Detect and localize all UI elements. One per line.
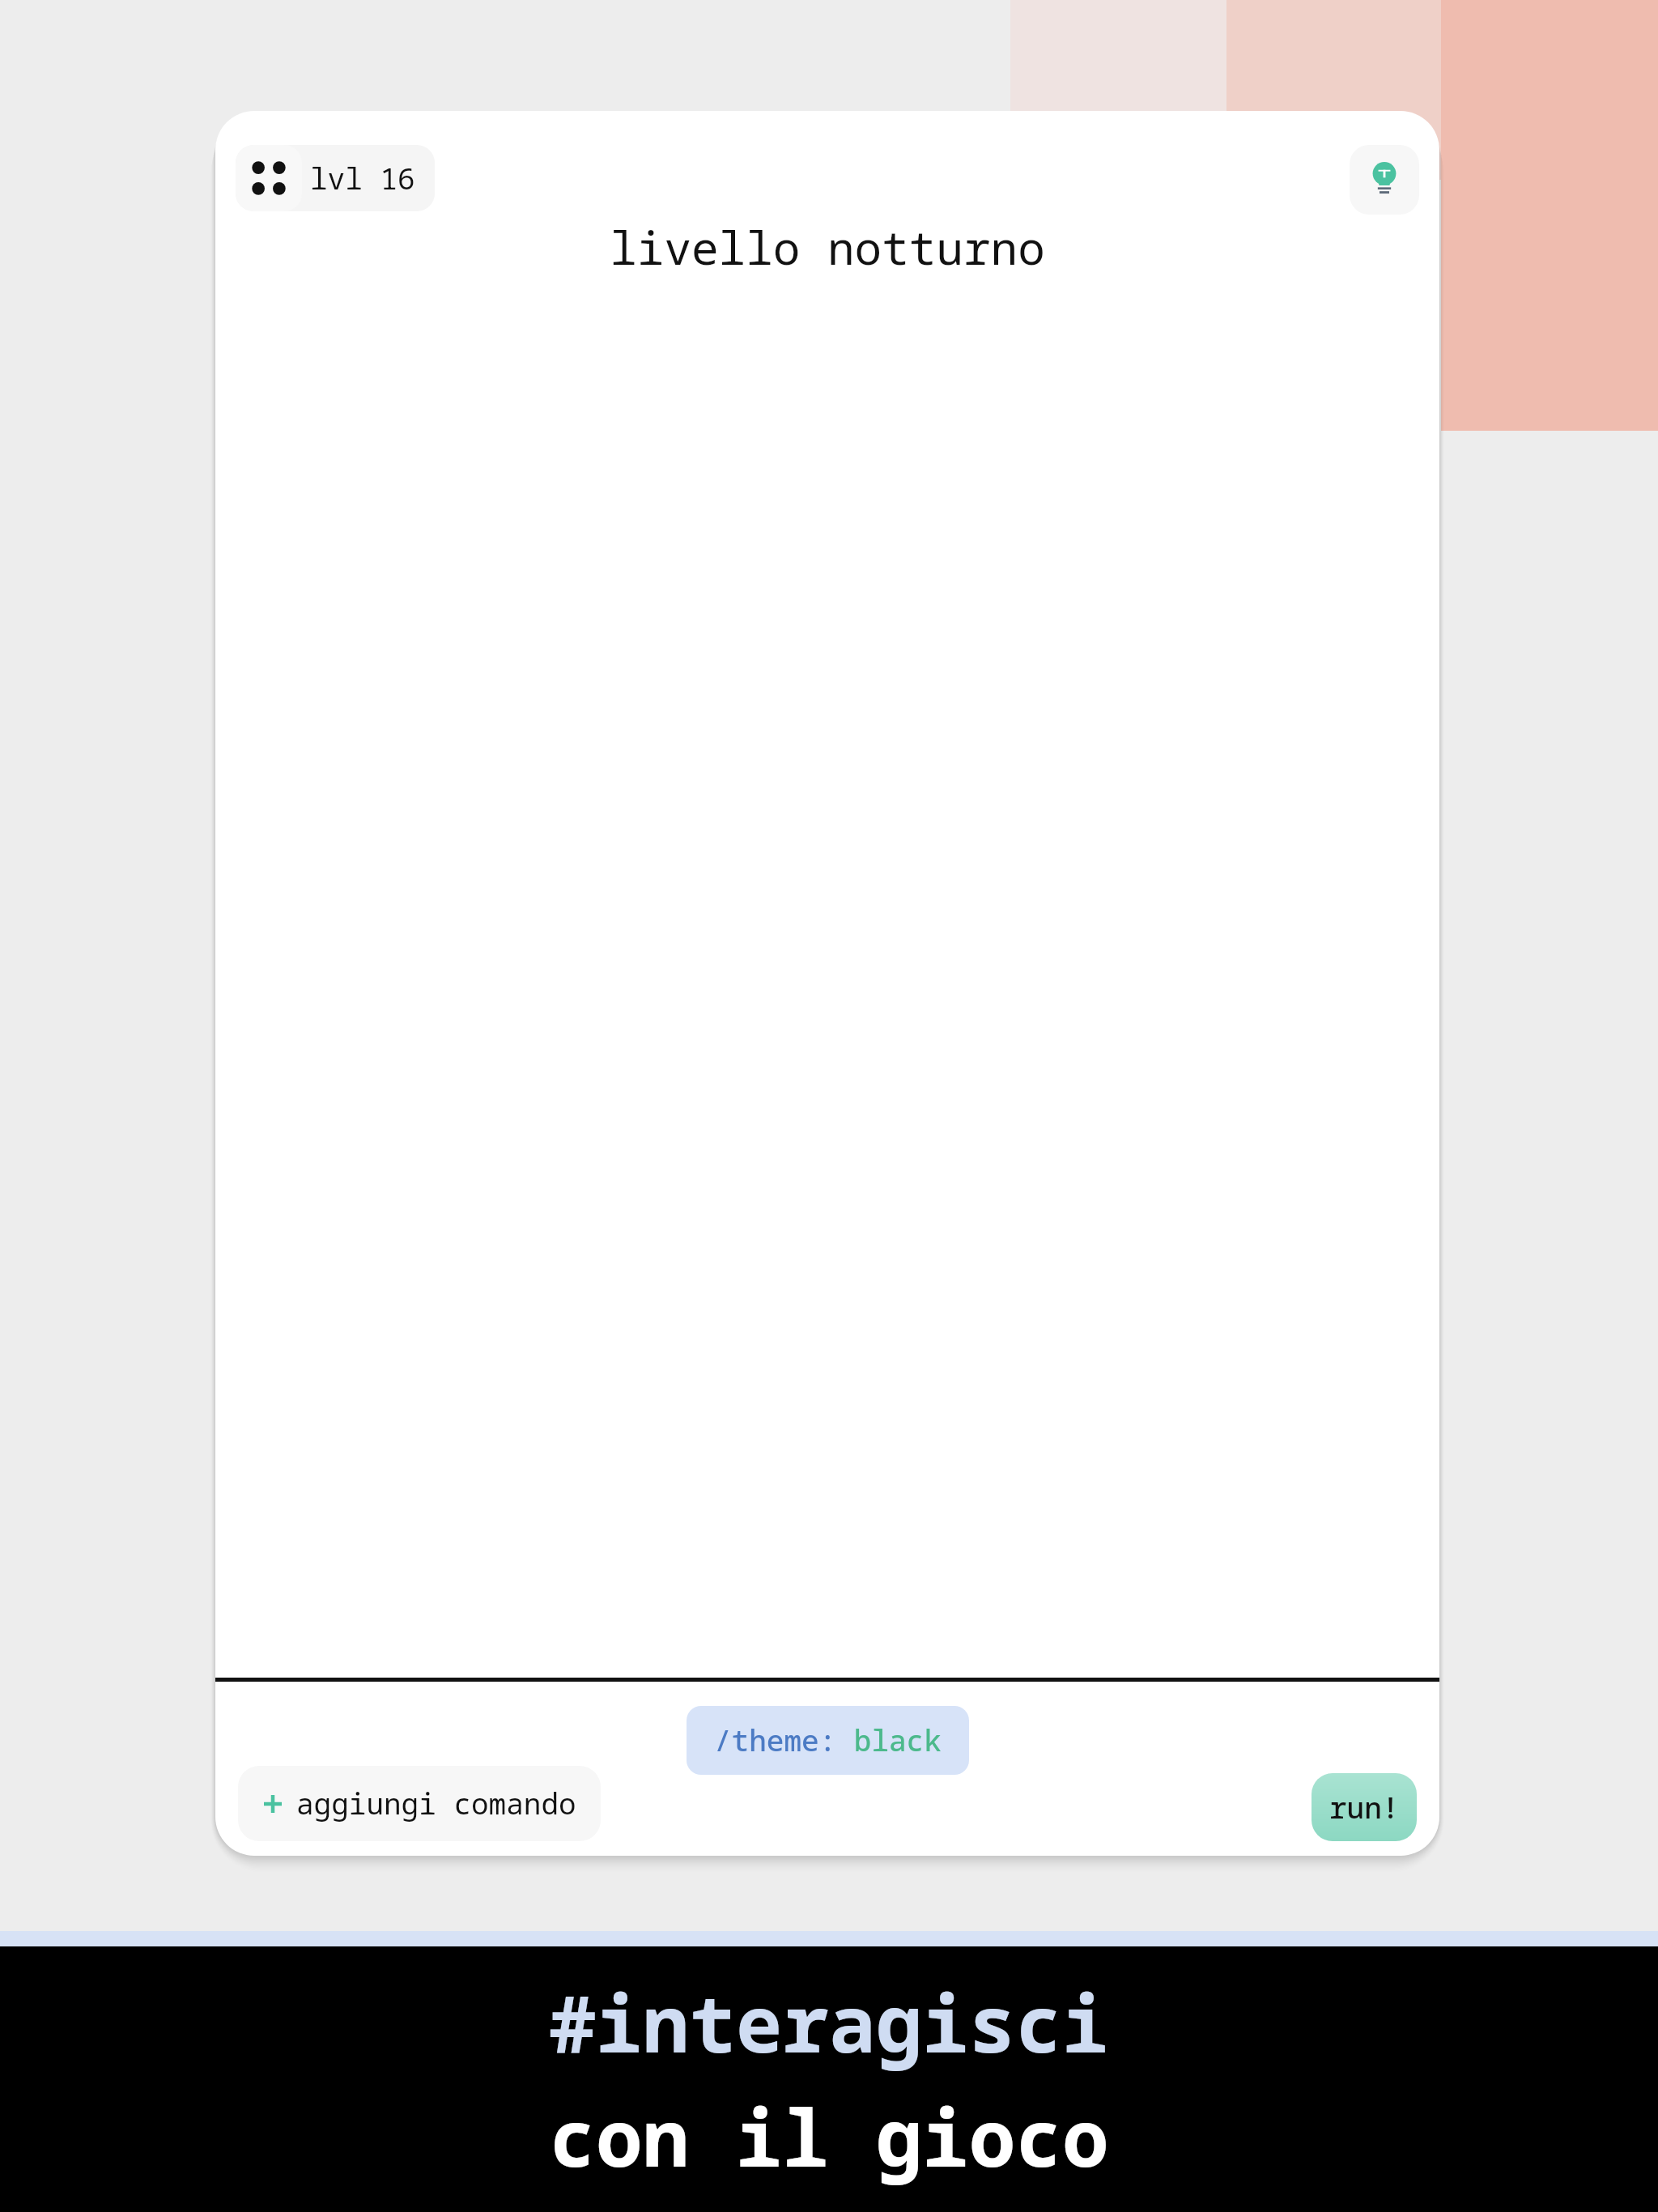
button[interactable]: Suggerimento xyxy=(1350,145,1419,215)
button[interactable]: run! xyxy=(1312,1773,1417,1841)
staticText: livello notturno xyxy=(610,216,1045,278)
staticText: #interagisci xyxy=(549,1969,1109,2075)
button[interactable]: aggiungi comando xyxy=(238,1766,601,1841)
button[interactable]: /theme: black xyxy=(687,1706,969,1775)
staticText: con il gioco xyxy=(549,2083,1109,2189)
staticText: /theme: black xyxy=(714,1721,942,1760)
staticText: run! xyxy=(1329,1788,1400,1827)
staticText: aggiungi comando xyxy=(296,1784,576,1823)
button[interactable]: lvl 16 xyxy=(236,145,435,211)
staticText: lvl 16 xyxy=(310,159,415,198)
